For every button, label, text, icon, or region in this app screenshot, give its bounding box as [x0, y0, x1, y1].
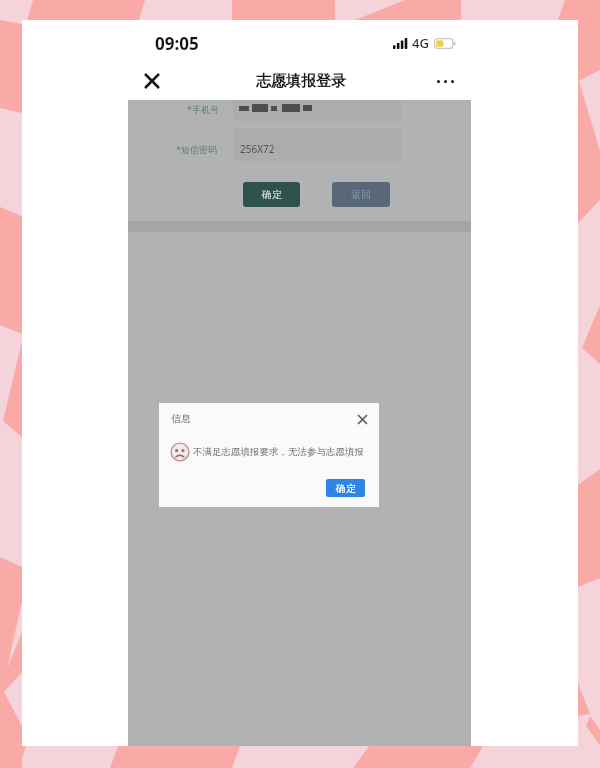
staticText: 不满足志愿填报要求，无法参与志愿填报	[193, 446, 364, 458]
staticText: 确定	[336, 482, 356, 495]
staticText: 确定	[262, 188, 282, 201]
button[interactable]: Close	[138, 67, 166, 95]
staticText: 4G	[412, 34, 429, 52]
button[interactable]: 确定	[243, 182, 300, 207]
button[interactable]: More options	[431, 67, 459, 95]
staticText: *手机号	[187, 103, 219, 115]
staticText: 信息	[171, 412, 191, 425]
staticText: 09:05	[155, 32, 199, 55]
button[interactable]: Close dialog	[353, 410, 371, 428]
staticText: 志愿填报登录	[256, 72, 346, 91]
button[interactable]: 确定	[326, 479, 365, 497]
staticText: 返回	[351, 188, 371, 201]
staticText: *短信密码	[176, 143, 217, 155]
staticText: 256X72	[240, 142, 275, 156]
button[interactable]: 返回	[332, 182, 390, 207]
